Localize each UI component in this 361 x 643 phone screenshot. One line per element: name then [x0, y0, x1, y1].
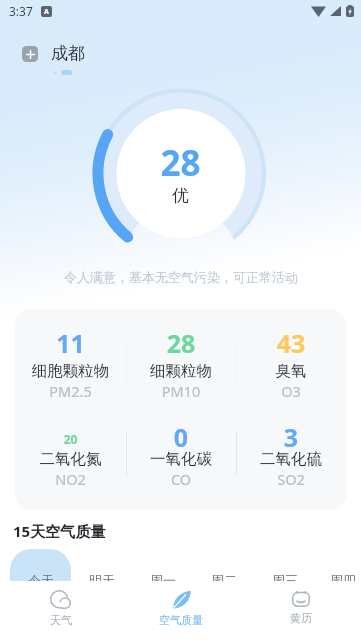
- button[interactable]: Add city: [22, 46, 38, 62]
- staticText: 优: [0, 185, 361, 206]
- button[interactable]: 周二: [193, 549, 254, 581]
- staticText: 28: [126, 326, 236, 360]
- staticText: 3: [236, 420, 346, 454]
- staticText: 一氧化碳: [126, 449, 236, 469]
- button[interactable]: Air quality: [121, 581, 241, 643]
- staticText: 今天: [28, 572, 54, 581]
- button[interactable]: 周四: [315, 549, 361, 581]
- staticText: 周四: [330, 572, 356, 581]
- button[interactable]: 周一: [132, 549, 193, 581]
- button[interactable]: 今天: [10, 549, 71, 581]
- staticText: 11: [15, 326, 126, 360]
- staticText: 令人满意，基本无空气污染，可正常活动: [64, 269, 298, 285]
- staticText: 20: [15, 431, 126, 447]
- button[interactable]: Weather: [0, 581, 121, 643]
- button[interactable]: 43: [236, 309, 346, 408]
- staticText: 二氧化硫: [236, 449, 346, 469]
- button[interactable]: 0: [126, 397, 236, 499]
- staticText: 二氧化氮: [15, 449, 126, 469]
- staticText: O3: [236, 381, 346, 401]
- staticText: A: [44, 7, 49, 17]
- staticText: 3:37: [9, 3, 33, 19]
- staticText: CO: [126, 469, 236, 489]
- staticText: 明天: [89, 572, 115, 581]
- button[interactable]: 20: [15, 397, 126, 499]
- staticText: 28: [0, 139, 361, 187]
- staticText: PM10: [126, 381, 236, 401]
- staticText: 细胞颗粒物: [15, 361, 126, 381]
- staticText: PM2.5: [15, 381, 126, 401]
- button[interactable]: 11: [15, 309, 126, 408]
- button[interactable]: Almanac: [241, 581, 361, 643]
- button[interactable]: 28: [126, 309, 236, 408]
- staticText: 细颗粒物: [126, 361, 236, 381]
- staticText: SO2: [236, 469, 346, 489]
- button[interactable]: 周三: [254, 549, 315, 581]
- staticText: 黄历: [290, 611, 312, 625]
- staticText: 臭氧: [236, 361, 346, 381]
- staticText: 43: [236, 326, 346, 360]
- staticText: 天气: [50, 613, 72, 627]
- staticText: 周一: [150, 572, 176, 581]
- staticText: 空气质量: [159, 613, 203, 627]
- staticText: 15天空气质量: [13, 521, 106, 541]
- staticText: 成都: [51, 43, 85, 64]
- button[interactable]: 3: [236, 397, 346, 499]
- staticText: 周二: [211, 572, 237, 581]
- staticText: 0: [126, 420, 236, 454]
- staticText: 周三: [272, 572, 298, 581]
- button[interactable]: 明天: [71, 549, 132, 581]
- staticText: NO2: [15, 469, 126, 489]
